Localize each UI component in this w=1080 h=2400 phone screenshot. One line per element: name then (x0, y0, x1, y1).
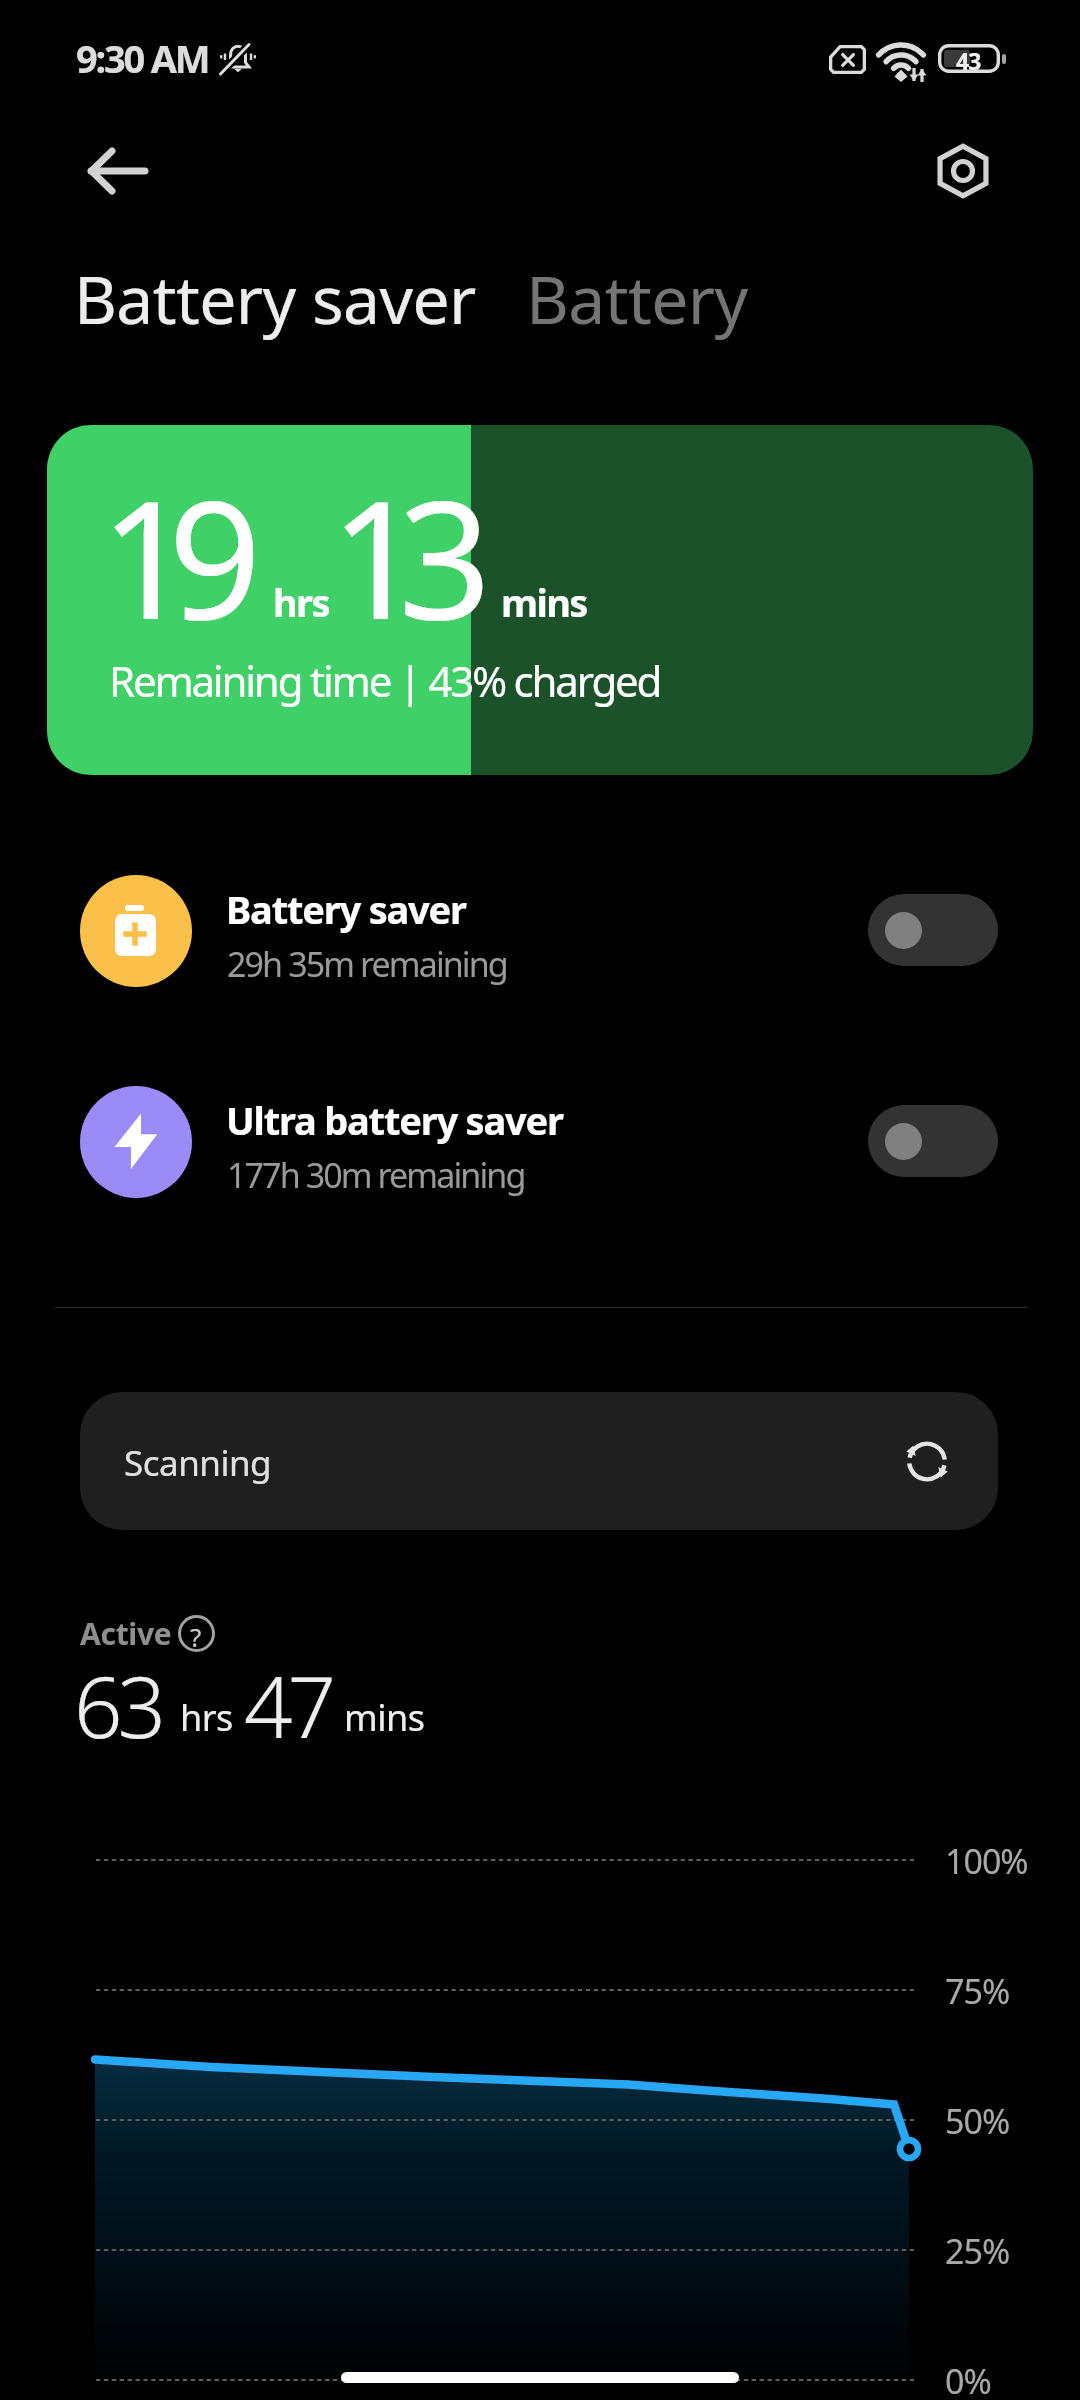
staticText: mins (501, 576, 587, 628)
button[interactable]: Ultra battery saver (0, 1042, 1080, 1242)
button[interactable]: Settings (919, 127, 1007, 215)
staticText: Battery (526, 253, 748, 343)
staticText: 75% (945, 1968, 1010, 2014)
staticText: 19 (100, 445, 237, 667)
staticText: 29h 35m remaining (227, 941, 507, 987)
staticText: 63 (74, 1647, 162, 1763)
staticText: 9:30 AM (76, 32, 209, 84)
staticText: 25% (945, 2228, 1010, 2274)
staticText: 0% (945, 2358, 991, 2400)
staticText: hrs (180, 1693, 233, 1742)
staticText: Battery saver (74, 253, 476, 343)
staticText: ? (190, 1619, 202, 1654)
staticText: Battery saver (226, 883, 466, 935)
staticText: 43 (956, 45, 981, 76)
staticText: 47 (244, 1647, 332, 1763)
button[interactable]: Toggle Battery saver (868, 894, 998, 966)
staticText: hrs (273, 576, 329, 628)
staticText: 13 (330, 445, 467, 667)
button[interactable]: Battery (526, 253, 748, 343)
button[interactable]: Battery saver (0, 831, 1080, 1031)
button[interactable]: Battery saver (74, 253, 476, 343)
button[interactable]: Scanning (80, 1392, 998, 1530)
staticText: Active (80, 1613, 172, 1654)
staticText: 100% (945, 1838, 1028, 1884)
staticText: Ultra battery saver (226, 1094, 563, 1146)
button[interactable]: 19 (47, 425, 1033, 775)
staticText: Scanning (124, 1439, 272, 1487)
button[interactable]: Toggle Ultra battery saver (868, 1105, 998, 1177)
button[interactable]: Help about active time (177, 1614, 216, 1653)
staticText: Remaining time | 43% charged (109, 652, 661, 709)
staticText: mins (344, 1693, 425, 1742)
button[interactable]: Back (58, 127, 146, 215)
staticText: 177h 30m remaining (227, 1152, 525, 1198)
staticText: 50% (945, 2098, 1010, 2144)
